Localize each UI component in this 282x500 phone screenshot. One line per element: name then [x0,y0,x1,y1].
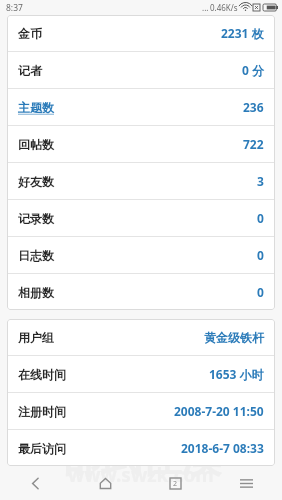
button[interactable]: 用户组 [7,319,275,356]
button[interactable]: 金币 [7,15,275,52]
staticText: 2 [173,479,178,489]
button[interactable]: Home [70,466,140,500]
staticText: 0 [257,247,264,263]
button[interactable]: 最后访问 [7,430,275,466]
button[interactable]: Back [0,466,70,500]
staticText: 最后访问 [18,441,66,456]
staticText: 1653 小时 [209,366,264,382]
staticText: 3 [257,173,264,189]
button[interactable]: Recent apps [140,466,211,500]
staticText: 日志数 [18,248,54,263]
staticText: 8:37 [6,2,23,14]
staticText: 相册数 [18,285,54,300]
button[interactable]: 注册时间 [7,393,275,430]
button[interactable]: 记录数 [7,200,275,237]
staticText: 0 [257,210,264,226]
staticText: 金币 [18,26,42,41]
staticText: 记者 [18,63,42,78]
staticText: www.swzk.com [68,462,214,488]
staticText: 黄金级铁杆 [204,330,264,345]
button[interactable]: 在线时间 [7,356,275,393]
button[interactable]: 好友数 [7,163,275,200]
staticText: 记录数 [18,211,54,226]
staticText: 2018-6-7 08:33 [181,440,264,456]
staticText: 0 分 [242,62,264,78]
staticText: 2231 枚 [221,25,264,41]
button[interactable]: 回帖数 [7,126,275,163]
button[interactable]: 主题数 [7,89,275,126]
button[interactable]: Menu [211,466,282,500]
staticText: 在线时间 [18,367,66,382]
button[interactable]: 记者 [7,52,275,89]
button[interactable]: 日志数 [7,237,275,274]
staticText: 722 [243,136,264,152]
staticText: 0.46K/s [210,2,238,13]
staticText: ... [202,2,209,13]
staticText: 注册时间 [18,404,66,419]
staticText: 主题数 [18,100,54,115]
staticText: 236 [243,99,264,115]
staticText: 好友数 [18,174,54,189]
staticText: 2008-7-20 11:50 [174,403,264,419]
button[interactable]: 相册数 [7,274,275,310]
staticText: 0 [257,284,264,300]
staticText: 用户组 [18,330,54,345]
staticText: 回帖数 [18,137,54,152]
staticText: 邵武佳溪 [61,432,221,482]
